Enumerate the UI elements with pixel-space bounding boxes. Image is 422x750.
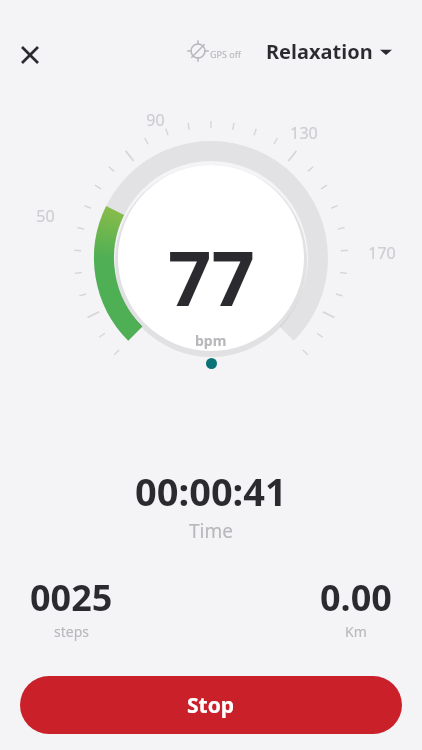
button[interactable]: Stop (20, 676, 402, 734)
staticText: Km (345, 622, 367, 641)
staticText: GPS off (210, 48, 241, 60)
staticText: Stop (187, 691, 235, 720)
staticText: Relaxation (266, 38, 373, 65)
button[interactable]: Close (12, 37, 48, 73)
button[interactable]: GPS off (186, 39, 241, 63)
staticText: 0.00 (320, 573, 392, 622)
staticText: steps (54, 622, 89, 641)
other: GPS off (186, 39, 210, 63)
staticText: 50 (36, 205, 55, 227)
staticText: 0025 (30, 573, 113, 622)
button[interactable]: Relaxation (266, 38, 392, 65)
staticText: Time (189, 518, 233, 544)
staticText: 90 (146, 109, 165, 131)
staticText: 77 (168, 225, 255, 329)
staticText: 130 (290, 122, 318, 144)
staticText: 170 (368, 242, 396, 264)
staticText: 00:00:41 (135, 465, 287, 517)
staticText: bpm (195, 331, 227, 350)
